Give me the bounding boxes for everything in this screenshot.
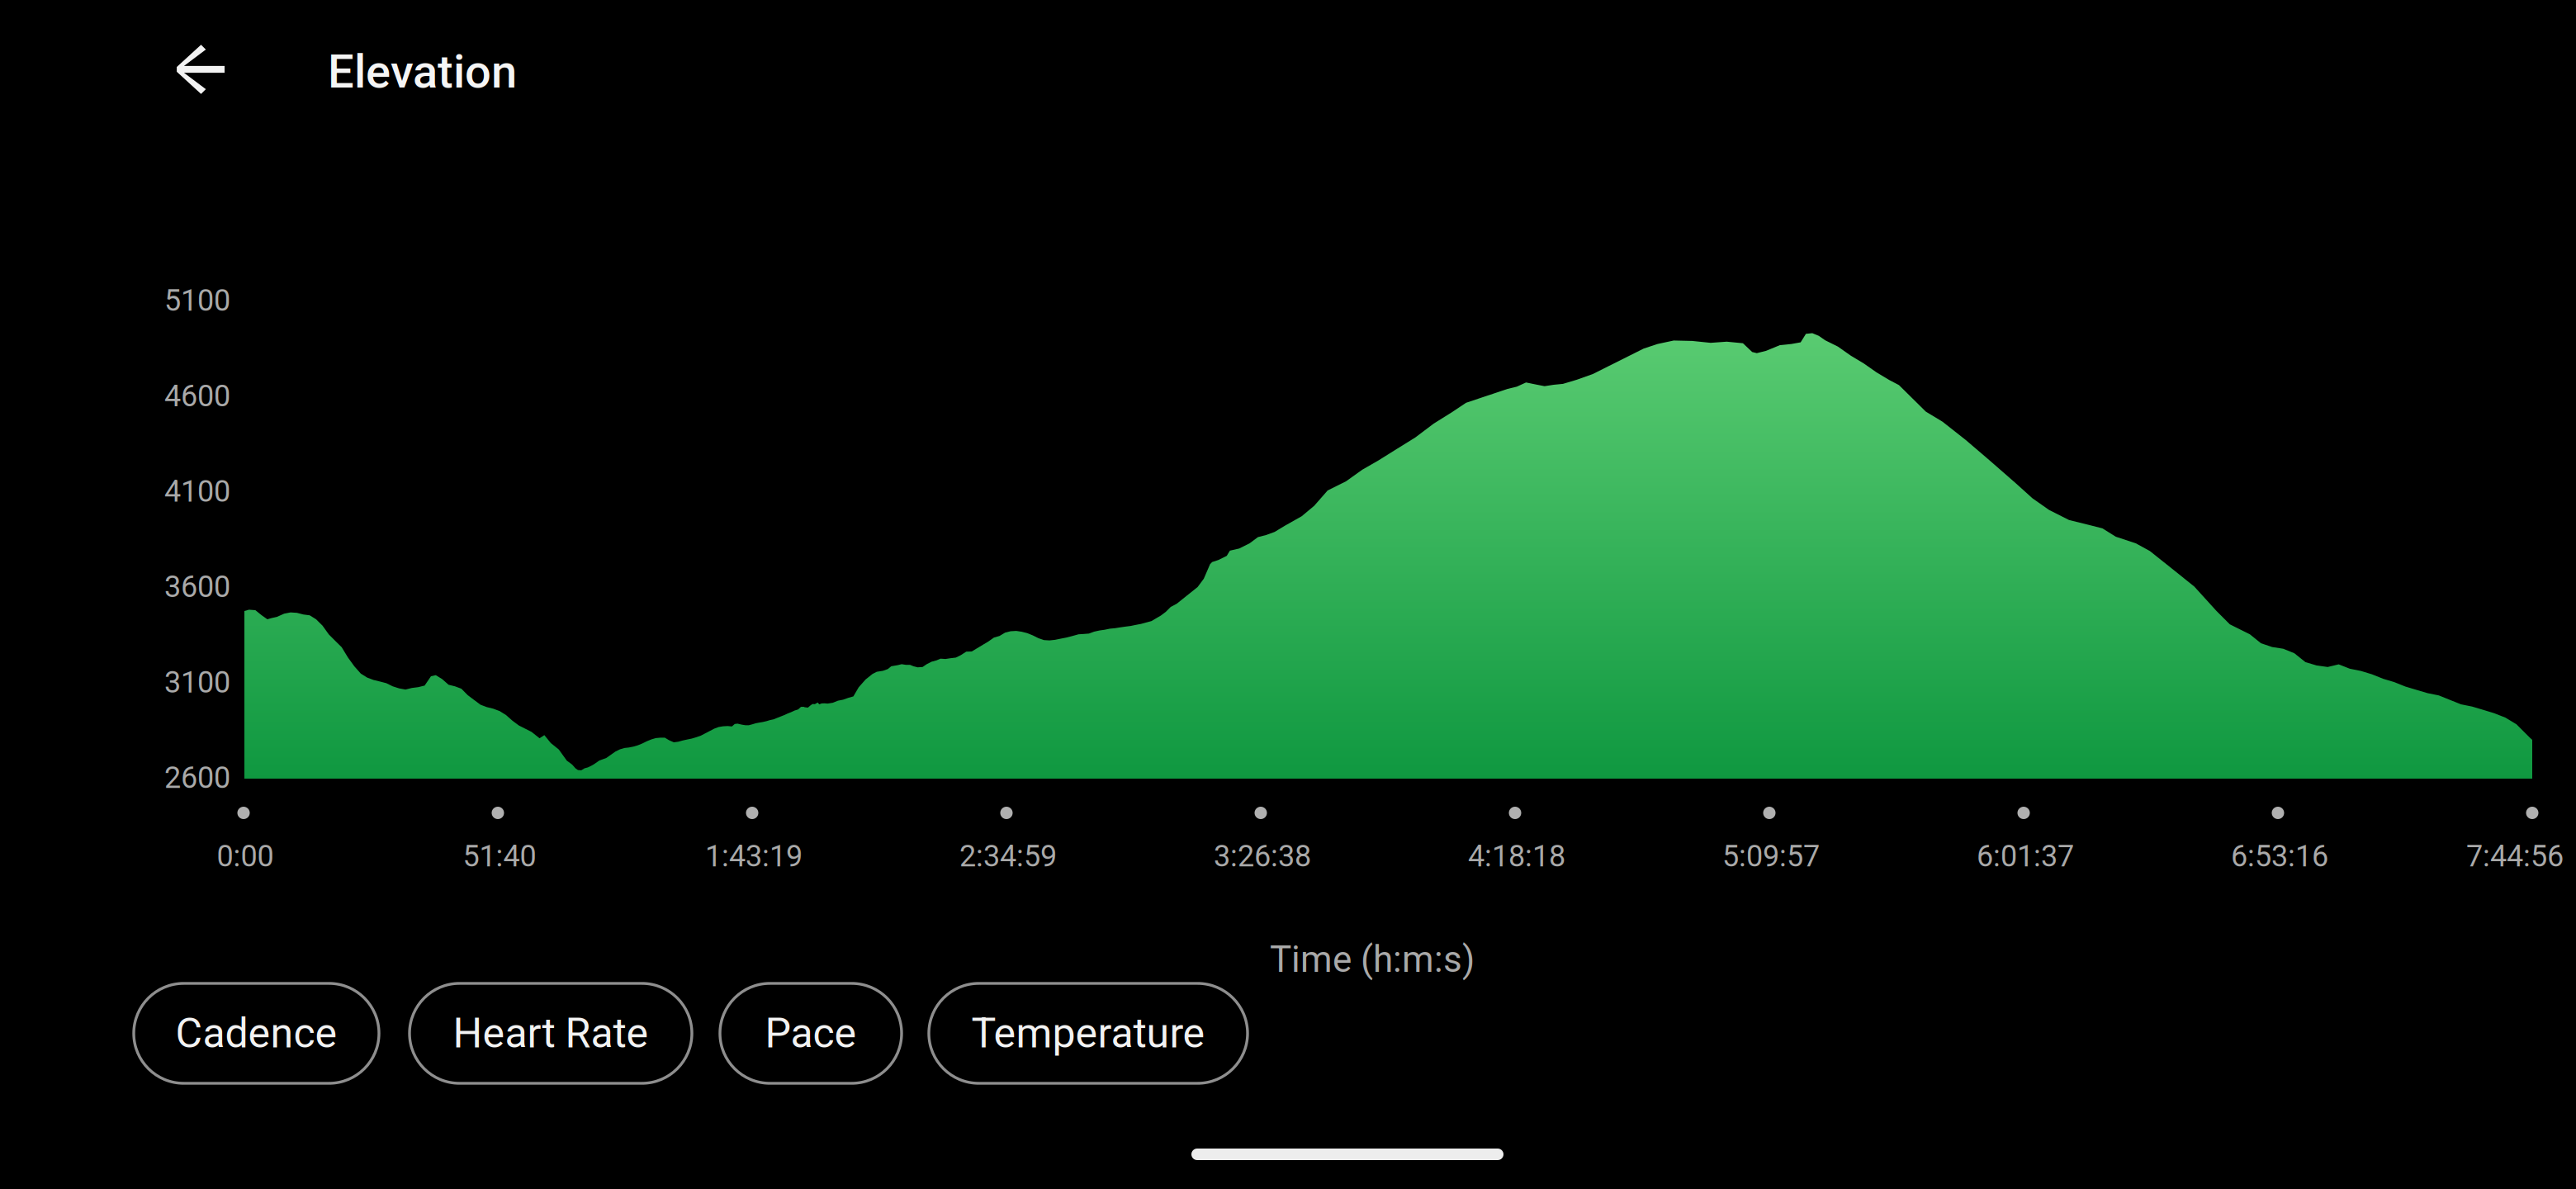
button[interactable]: Back [155, 24, 246, 115]
staticText: 6:53:16 [2231, 839, 2328, 874]
staticText: 6:01:37 [1977, 839, 2074, 874]
staticText: Time (h:m:s) [1270, 938, 1475, 981]
staticText: 4600 [164, 379, 230, 413]
staticText: 1:43:19 [705, 839, 803, 874]
staticText: 2600 [164, 760, 230, 795]
staticText: 5:09:57 [1722, 839, 1820, 874]
staticText: 0:00 [217, 839, 274, 874]
staticText: 3:26:38 [1214, 839, 1311, 874]
staticText: Elevation [328, 45, 517, 99]
staticText: 3100 [164, 665, 230, 700]
staticText: 4100 [164, 474, 230, 509]
button[interactable]: Temperature [929, 983, 1248, 1083]
staticText: Cadence [175, 1009, 337, 1058]
staticText: 5100 [164, 283, 230, 318]
staticText: 2:34:59 [959, 839, 1057, 874]
button[interactable]: Cadence [134, 983, 379, 1083]
staticText: Heart Rate [453, 1009, 649, 1058]
staticText: 51:40 [463, 839, 536, 874]
staticText: 3600 [164, 569, 230, 604]
staticText: 4:18:18 [1468, 839, 1565, 874]
staticText: Temperature [971, 1009, 1205, 1058]
staticText: 7:44:56 [2466, 839, 2564, 874]
staticText: Pace [765, 1009, 857, 1058]
button[interactable]: Pace [720, 983, 902, 1083]
button[interactable]: Heart Rate [410, 983, 692, 1083]
